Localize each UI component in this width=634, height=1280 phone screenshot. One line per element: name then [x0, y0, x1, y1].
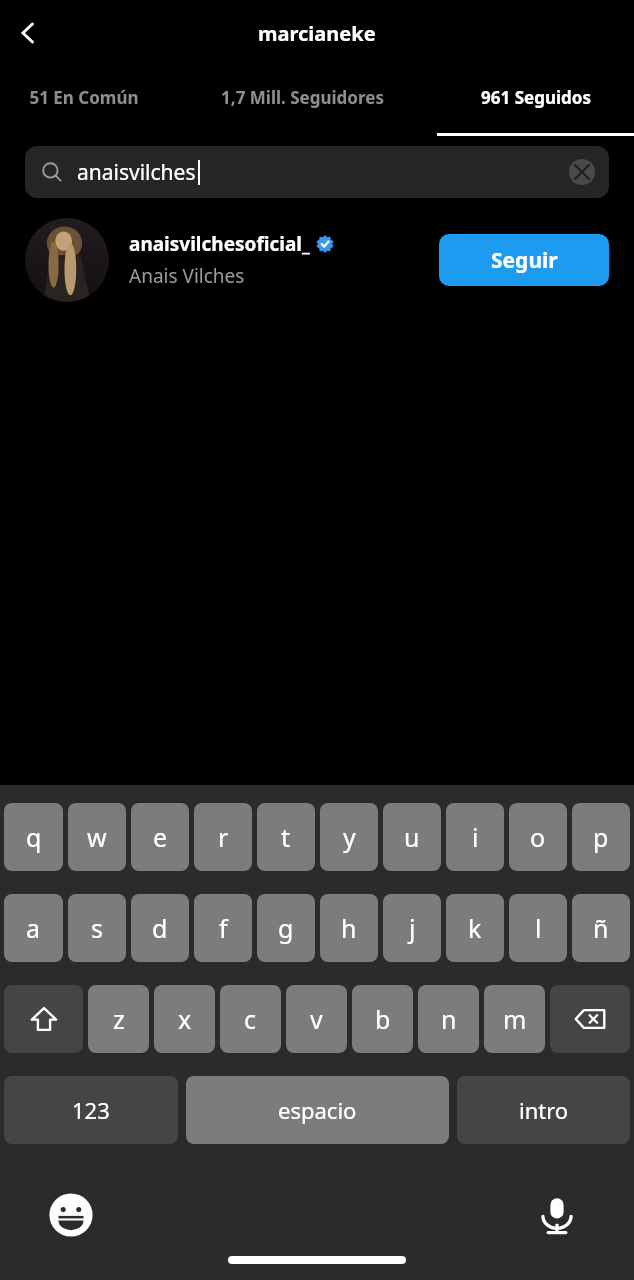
staticText: x: [178, 1002, 192, 1036]
button[interactable]: l: [509, 894, 567, 962]
staticText: u: [404, 820, 420, 854]
staticText: anaisvilches: [77, 158, 196, 187]
staticText: a: [26, 911, 41, 945]
staticText: y: [343, 820, 356, 854]
staticText: b: [375, 1002, 391, 1036]
staticText: z: [113, 1002, 125, 1036]
staticText: Anais Vilches: [129, 263, 245, 289]
button[interactable]: j: [383, 894, 441, 962]
button[interactable]: anaisvilchesoficial_: [0, 212, 634, 308]
button[interactable]: Clear search: [567, 157, 597, 187]
button[interactable]: p: [572, 803, 630, 871]
button[interactable]: o: [509, 803, 567, 871]
staticText: w: [87, 820, 107, 854]
staticText: n: [441, 1002, 457, 1036]
button[interactable]: 123: [4, 1076, 178, 1144]
button[interactable]: Emoji: [46, 1190, 96, 1240]
staticText: s: [91, 911, 103, 945]
staticText: 51 En Común: [29, 86, 139, 109]
button[interactable]: b: [352, 985, 413, 1053]
button[interactable]: d: [131, 894, 189, 962]
staticText: intro: [519, 1095, 569, 1125]
staticText: m: [503, 1002, 527, 1036]
staticText: c: [244, 1002, 257, 1036]
button[interactable]: k: [446, 894, 504, 962]
button[interactable]: c: [220, 985, 281, 1053]
button[interactable]: s: [68, 894, 126, 962]
staticText: p: [593, 820, 609, 854]
staticText: o: [530, 820, 546, 854]
staticText: h: [341, 911, 357, 945]
button[interactable]: z: [88, 985, 149, 1053]
button[interactable]: ñ: [572, 894, 630, 962]
staticText: f: [219, 911, 228, 945]
staticText: v: [310, 1002, 323, 1036]
button[interactable]: u: [383, 803, 441, 871]
staticText: e: [153, 820, 168, 854]
button[interactable]: n: [418, 985, 479, 1053]
button[interactable]: f: [194, 894, 252, 962]
staticText: marcianeke: [258, 20, 376, 47]
staticText: j: [409, 911, 416, 945]
button[interactable]: y: [320, 803, 378, 871]
button[interactable]: Seguir: [439, 234, 609, 286]
button[interactable]: Back: [4, 9, 52, 57]
button[interactable]: i: [446, 803, 504, 871]
button[interactable]: g: [257, 894, 315, 962]
staticText: g: [278, 911, 294, 945]
button[interactable]: 1,7 Mill. Seguidores: [168, 66, 437, 136]
button[interactable]: m: [484, 985, 545, 1053]
button[interactable]: Backspace: [550, 985, 630, 1053]
button[interactable]: x: [154, 985, 215, 1053]
staticText: 1,7 Mill. Seguidores: [221, 86, 384, 109]
staticText: q: [26, 820, 42, 854]
button[interactable]: q: [4, 803, 63, 871]
staticText: i: [472, 820, 479, 854]
button[interactable]: espacio: [186, 1076, 449, 1144]
button[interactable]: t: [257, 803, 315, 871]
button[interactable]: anaisvilches: [25, 146, 609, 198]
staticText: Seguir: [491, 246, 558, 275]
button[interactable]: a: [4, 894, 63, 962]
button[interactable]: intro: [457, 1076, 630, 1144]
staticText: l: [535, 911, 542, 945]
button[interactable]: 51 En Común: [0, 66, 168, 136]
staticText: r: [218, 820, 229, 854]
staticText: ñ: [593, 911, 609, 945]
button[interactable]: Voice input: [532, 1190, 582, 1240]
staticText: t: [281, 820, 291, 854]
button[interactable]: r: [194, 803, 252, 871]
staticText: k: [468, 911, 482, 945]
staticText: 123: [72, 1095, 110, 1125]
button[interactable]: h: [320, 894, 378, 962]
button[interactable]: w: [68, 803, 126, 871]
staticText: 961 Seguidos: [481, 86, 591, 109]
button[interactable]: v: [286, 985, 347, 1053]
staticText: espacio: [278, 1095, 357, 1125]
staticText: anaisvilchesoficial_: [129, 231, 310, 257]
button[interactable]: 961 Seguidos: [437, 66, 634, 136]
button[interactable]: e: [131, 803, 189, 871]
button[interactable]: Shift: [4, 985, 83, 1053]
staticText: d: [152, 911, 168, 945]
